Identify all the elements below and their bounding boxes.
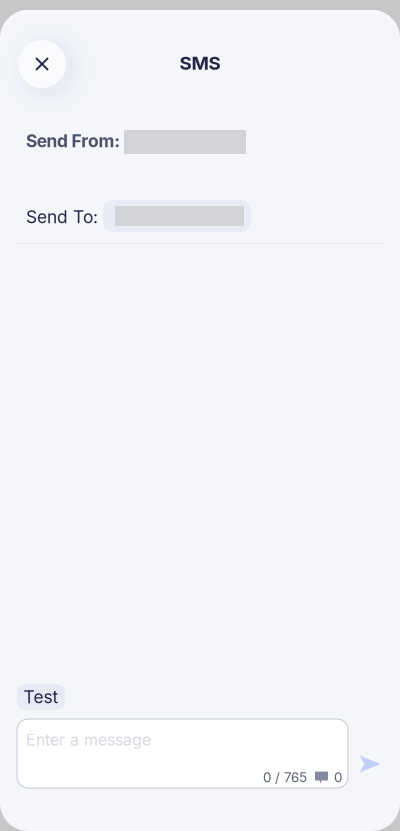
staticText: 0 bbox=[334, 769, 342, 785]
staticText: Send From: bbox=[26, 130, 120, 151]
staticText: Send To: bbox=[26, 206, 98, 227]
staticText: Test bbox=[23, 686, 58, 707]
button[interactable]: Close bbox=[18, 40, 66, 88]
staticText: 0 / 765 bbox=[263, 769, 307, 785]
button[interactable]: Send bbox=[359, 755, 381, 773]
staticText: Enter a message bbox=[26, 730, 151, 749]
staticText: SMS bbox=[179, 52, 220, 74]
button[interactable]: Test bbox=[17, 684, 65, 710]
